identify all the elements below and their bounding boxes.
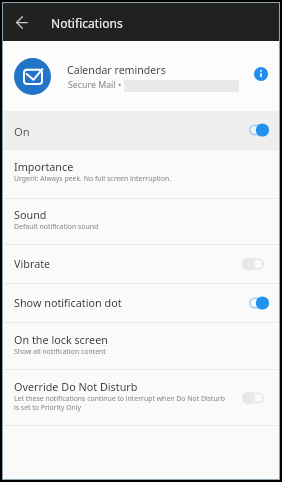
button[interactable]: Sound (3, 199, 279, 244)
button[interactable]: Vibrate (3, 245, 279, 283)
staticText: Urgent: Always peek. No full screen inte… (14, 174, 172, 183)
staticText: Default notification sound (14, 222, 99, 231)
button[interactable]: Show notification dot (3, 284, 279, 322)
button[interactable]: Override Do Not Disturb (3, 370, 279, 425)
button[interactable]: Back (7, 8, 36, 37)
staticText: Sound (14, 207, 47, 222)
staticText: On (14, 124, 30, 139)
staticText: Let these notifications continue to inte… (14, 394, 225, 412)
staticText: Show notification dot (14, 295, 122, 310)
staticText: Secure Mail • (68, 79, 122, 91)
staticText: Notifications (51, 15, 123, 31)
button[interactable]: On the lock screen (3, 323, 279, 369)
staticText: Override Do Not Disturb (14, 379, 138, 394)
staticText: Show all notification content (14, 347, 106, 356)
staticText: Calendar reminders (67, 63, 166, 77)
button[interactable]: On (3, 111, 279, 149)
staticText: On the lock screen (14, 332, 108, 347)
staticText: Vibrate (14, 256, 51, 271)
button[interactable]: Info (251, 64, 271, 84)
button[interactable]: Importance (3, 150, 279, 198)
staticText: Importance (14, 159, 74, 174)
